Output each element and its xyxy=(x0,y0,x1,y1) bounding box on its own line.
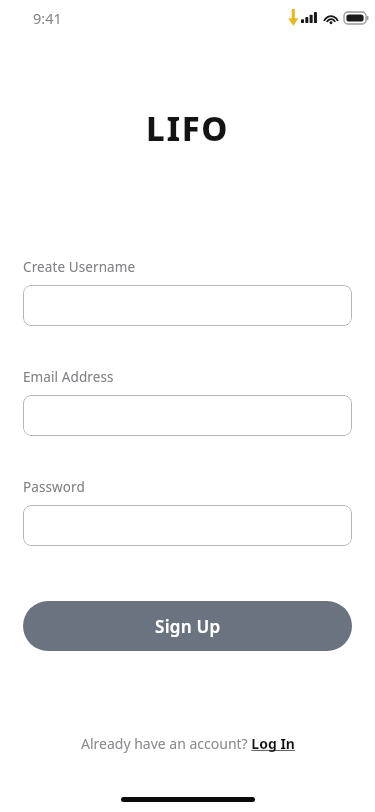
staticText: Already have an account? Log In xyxy=(81,734,295,753)
staticText: Sign Up xyxy=(155,615,221,638)
staticText: Create Username xyxy=(23,258,136,276)
button[interactable] xyxy=(23,505,352,546)
staticText: Email Address xyxy=(23,368,114,386)
staticText: Password xyxy=(23,478,85,496)
button[interactable] xyxy=(23,285,352,326)
button[interactable] xyxy=(23,395,352,436)
staticText: 9:41 xyxy=(33,8,62,28)
button[interactable]: Already have an account? Log In xyxy=(77,730,299,757)
staticText: LIFO xyxy=(146,106,229,151)
button[interactable]: Sign Up xyxy=(23,601,352,651)
